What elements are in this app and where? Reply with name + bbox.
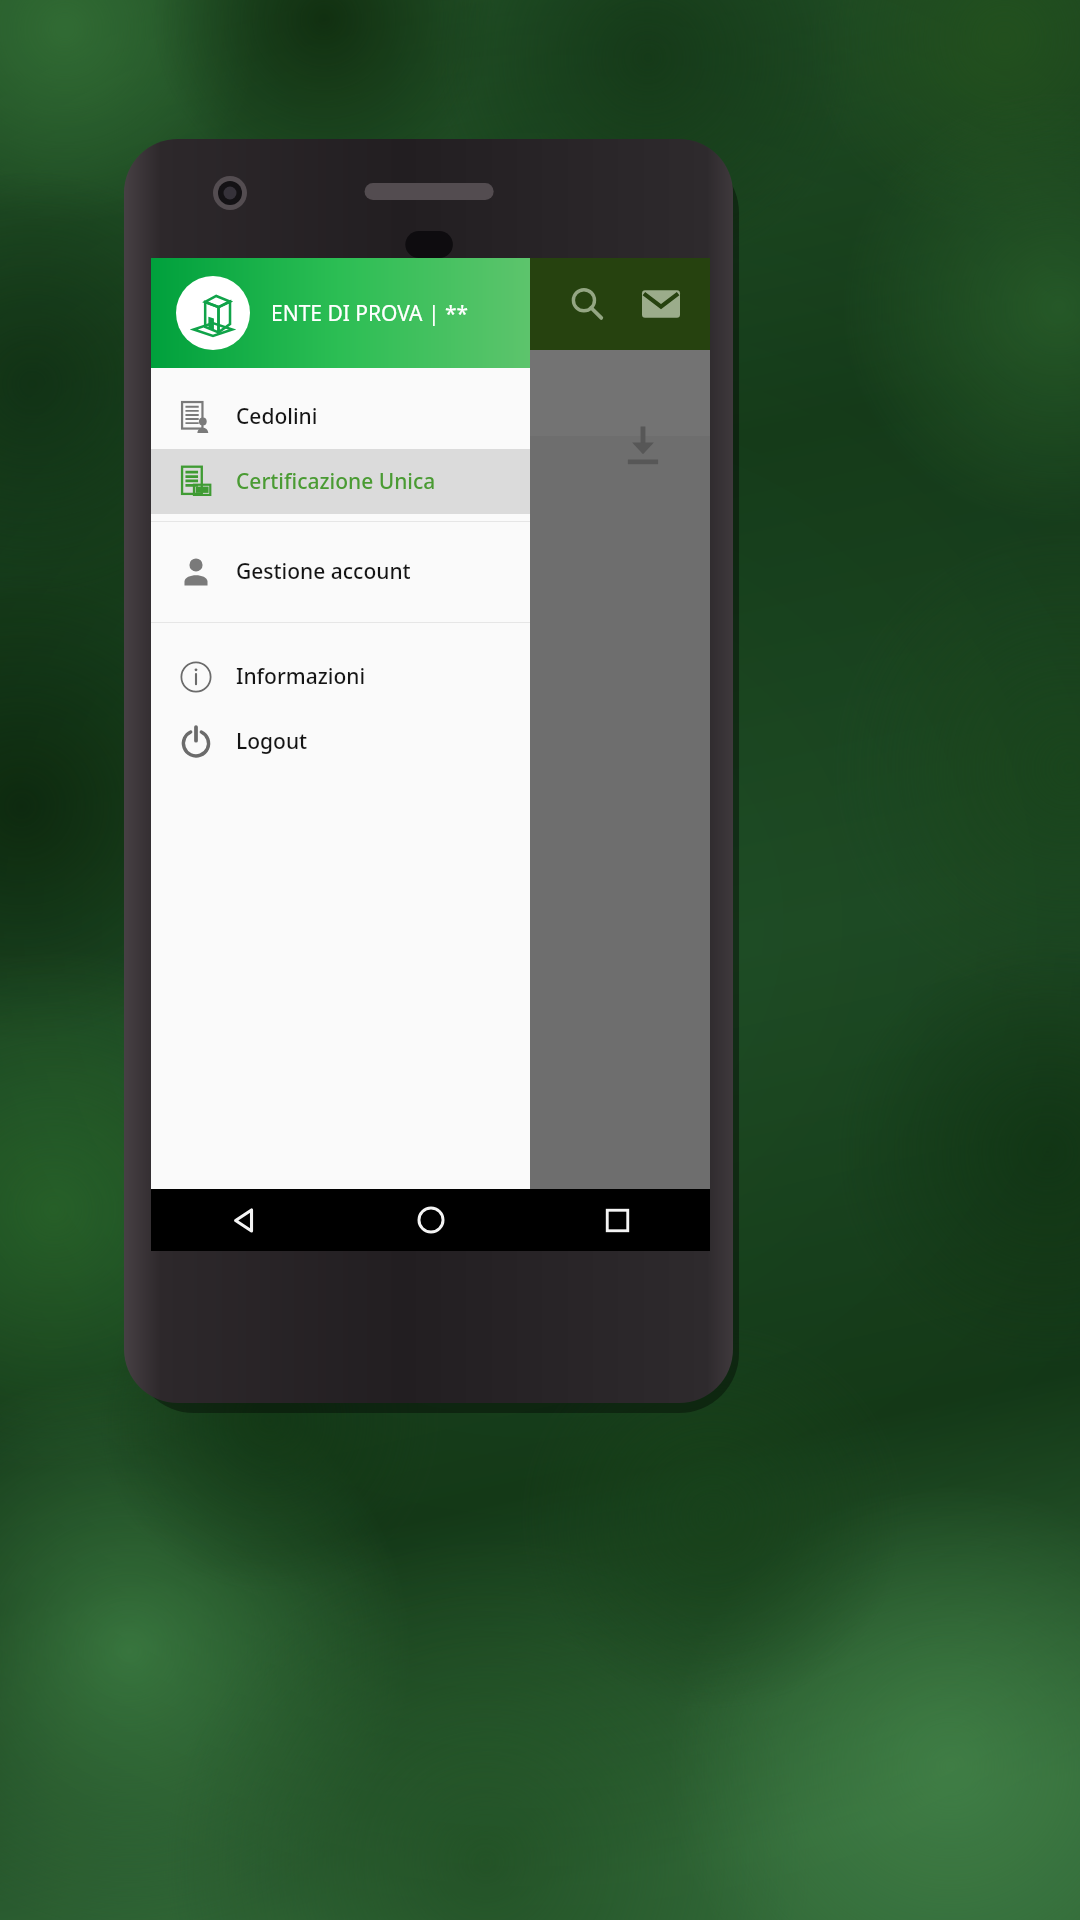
- staticText: Cedolini: [236, 402, 318, 431]
- staticText: Informazioni: [236, 662, 366, 691]
- staticText: Logout: [236, 727, 308, 756]
- staticText: Gestione account: [236, 557, 411, 586]
- button[interactable]: Home: [338, 1189, 524, 1251]
- button[interactable]: Informazioni: [151, 644, 530, 709]
- button[interactable]: Logout: [151, 709, 530, 774]
- button[interactable]: Certificazione Unica: [151, 449, 530, 514]
- button[interactable]: Back: [151, 1189, 338, 1251]
- button[interactable]: Gestione account: [151, 539, 530, 604]
- button[interactable]: Search: [550, 267, 624, 341]
- staticText: Certificazione Unica: [236, 467, 436, 496]
- button[interactable]: Cedolini: [151, 384, 530, 449]
- button[interactable]: ENTE DI PROVA | ** DEMO S..: [151, 258, 530, 368]
- button[interactable]: Recent apps: [524, 1189, 710, 1251]
- staticText: ENTE DI PROVA | ** DEMO S..: [271, 299, 530, 328]
- button[interactable]: Messages: [624, 267, 698, 341]
